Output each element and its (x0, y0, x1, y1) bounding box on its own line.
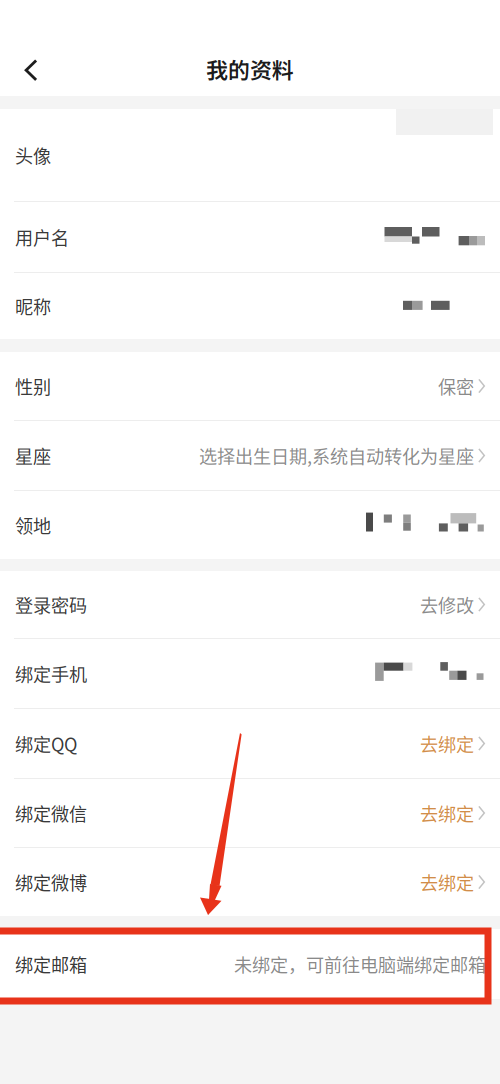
button[interactable]: 头像 (0, 109, 500, 201)
button[interactable]: 绑定邮箱 (0, 929, 500, 999)
staticText: 绑定邮箱 (15, 951, 87, 977)
button[interactable]: 用户名 (0, 202, 500, 272)
staticText: 去绑定 (420, 800, 474, 826)
staticText: 绑定QQ (15, 730, 77, 757)
staticText: 昵称 (15, 293, 51, 319)
staticText: 未绑定，可前往电脑端绑定邮箱 (234, 951, 486, 977)
button[interactable]: 领地 (0, 491, 500, 559)
button[interactable]: 绑定手机 (0, 639, 500, 708)
staticText: 选择出生日期,系统自动转化为星座 (199, 442, 474, 469)
staticText: 星座 (15, 442, 51, 469)
staticText: 绑定微信 (15, 800, 87, 826)
staticText: 保密 (438, 373, 474, 399)
button[interactable]: 昵称 (0, 273, 500, 339)
staticText: 登录密码 (15, 591, 87, 618)
staticText: 绑定手机 (15, 660, 87, 687)
staticText: 去绑定 (420, 730, 474, 757)
staticText: 性别 (15, 373, 51, 399)
staticText: 头像 (15, 142, 51, 168)
button[interactable]: Back (7, 48, 55, 92)
button[interactable]: 星座 (0, 421, 500, 490)
button[interactable]: 登录密码 (0, 571, 500, 638)
staticText: 领地 (15, 512, 51, 538)
button[interactable]: 绑定微博 (0, 848, 500, 916)
staticText: 绑定微博 (15, 869, 87, 895)
button[interactable]: 绑定QQ (0, 709, 500, 778)
staticText: 我的资料 (206, 53, 294, 85)
button[interactable]: 性别 (0, 352, 500, 420)
staticText: 去绑定 (420, 869, 474, 895)
staticText: 去修改 (420, 591, 474, 618)
button[interactable]: 绑定微信 (0, 779, 500, 847)
staticText: 用户名 (15, 224, 69, 250)
